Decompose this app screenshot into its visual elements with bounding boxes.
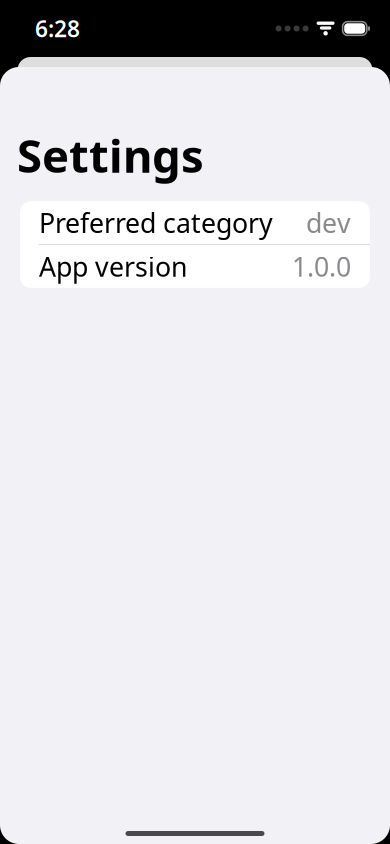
button[interactable]: Preferred category xyxy=(20,201,370,244)
staticText: Settings xyxy=(17,125,204,185)
staticText: dev xyxy=(306,205,351,240)
staticText: 1.0.0 xyxy=(292,249,351,284)
staticText: Preferred category xyxy=(39,205,273,240)
staticText: App version xyxy=(39,249,187,284)
button[interactable]: App version xyxy=(20,245,370,288)
staticText: 6:28 xyxy=(35,13,80,43)
